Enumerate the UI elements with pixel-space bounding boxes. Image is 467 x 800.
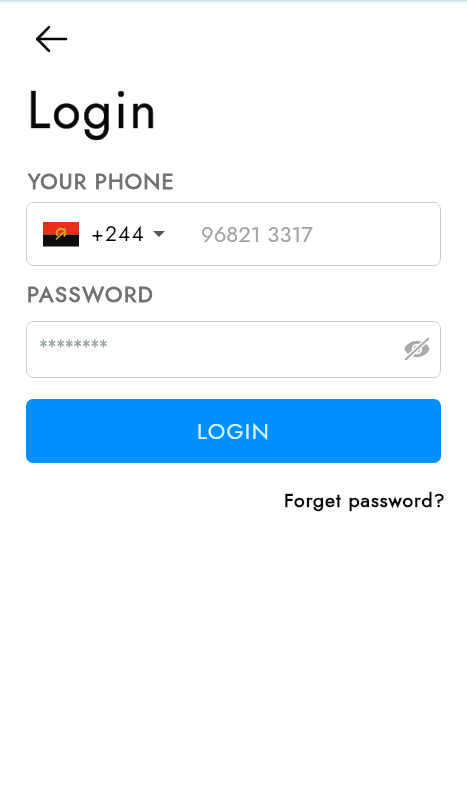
staticText: YOUR PHONE <box>28 165 175 197</box>
staticText: Login <box>27 72 159 147</box>
button[interactable]: Show password <box>395 321 439 377</box>
button[interactable]: LOGIN <box>26 399 441 463</box>
staticText: PASSWORD <box>27 278 155 310</box>
staticText: Login <box>27 72 159 147</box>
staticText: LOGIN <box>197 415 271 447</box>
staticText: +244 <box>91 219 145 249</box>
button[interactable]: Forget password? <box>284 486 446 514</box>
staticText: 96821 3317 <box>201 218 313 250</box>
button[interactable]: Select country code <box>43 219 165 249</box>
staticText: YOUR PHONE <box>28 165 175 197</box>
button[interactable]: Back <box>27 15 75 63</box>
staticText: PASSWORD <box>27 278 155 310</box>
